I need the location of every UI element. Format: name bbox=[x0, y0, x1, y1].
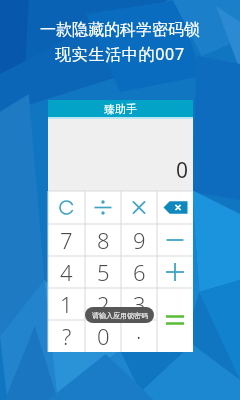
button[interactable]: 6 bbox=[121, 256, 157, 288]
button[interactable]: 9 bbox=[121, 224, 157, 256]
button[interactable]: Minus bbox=[157, 224, 193, 256]
button[interactable]: · bbox=[121, 320, 157, 352]
staticText: ? bbox=[62, 321, 72, 351]
button[interactable]: 8 bbox=[85, 224, 121, 256]
staticText: 7 bbox=[60, 225, 73, 255]
button[interactable]: 0 bbox=[85, 320, 121, 352]
button[interactable]: Plus bbox=[157, 256, 193, 288]
staticText: 6 bbox=[133, 257, 146, 287]
button[interactable]: 1 bbox=[48, 288, 85, 320]
button[interactable]: Clear bbox=[48, 191, 85, 224]
button[interactable]: 4 bbox=[48, 256, 85, 288]
button[interactable]: Divide bbox=[85, 191, 121, 224]
button[interactable]: 2 bbox=[85, 288, 121, 320]
staticText: 现实生活中的007 bbox=[55, 43, 185, 65]
staticText: 8 bbox=[97, 225, 110, 255]
staticText: 臻助手 bbox=[104, 102, 137, 116]
staticText: 请输入应用锁密码 bbox=[92, 311, 148, 320]
staticText: 3 bbox=[133, 289, 146, 319]
staticText: 1 bbox=[60, 289, 73, 319]
button[interactable]: 7 bbox=[48, 224, 85, 256]
staticText: 4 bbox=[60, 257, 73, 287]
button[interactable]: 5 bbox=[85, 256, 121, 288]
staticText: 9 bbox=[133, 225, 146, 255]
staticText: 0 bbox=[97, 321, 110, 351]
button[interactable]: Multiply bbox=[121, 191, 157, 224]
button[interactable]: 3 bbox=[121, 288, 157, 320]
staticText: 一款隐藏的科学密码锁 bbox=[40, 20, 200, 40]
staticText: 5 bbox=[97, 257, 110, 287]
button[interactable]: Equals bbox=[157, 288, 193, 352]
button[interactable]: Delete bbox=[157, 191, 193, 224]
staticText: 2 bbox=[97, 289, 110, 319]
staticText: 0 bbox=[176, 156, 189, 185]
staticText: · bbox=[136, 321, 142, 351]
button[interactable]: ? bbox=[48, 320, 85, 352]
